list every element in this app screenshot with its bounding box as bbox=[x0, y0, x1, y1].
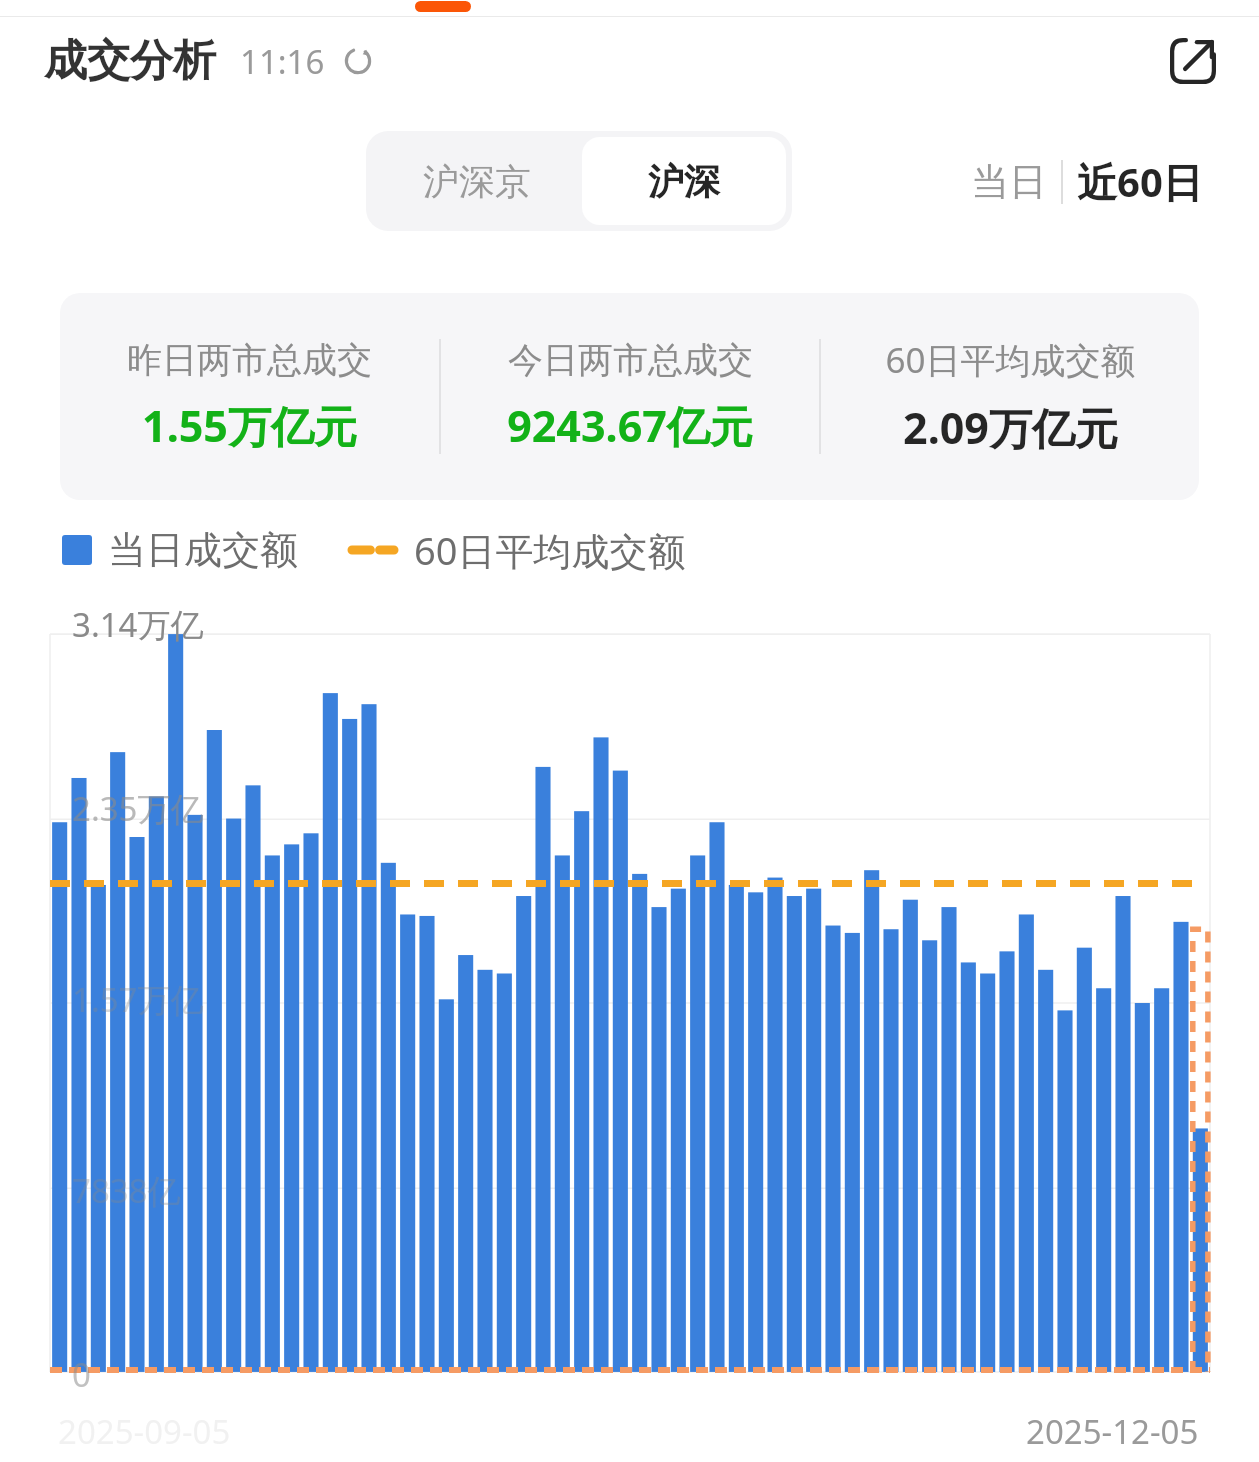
staticText: 2025-12-05 bbox=[1026, 1409, 1199, 1454]
staticText: 11:16 bbox=[240, 39, 325, 84]
staticText: 今日两市总成交 bbox=[508, 338, 753, 382]
staticText: 60日平均成交额 bbox=[414, 524, 686, 576]
staticText: 1.55万亿元 bbox=[142, 396, 357, 455]
staticText: 2.09万亿元 bbox=[903, 398, 1118, 457]
staticText: 成交分析 bbox=[44, 34, 216, 88]
staticText: 2.35万亿 bbox=[72, 786, 204, 831]
staticText: 当日 bbox=[971, 158, 1047, 206]
staticText: 3.14万亿 bbox=[72, 602, 204, 647]
staticText: 9243.67亿元 bbox=[507, 396, 753, 455]
staticText: 近60日 bbox=[1077, 154, 1203, 209]
button[interactable]: 沪深 bbox=[582, 137, 786, 225]
staticText: 2025-09-05 bbox=[58, 1409, 231, 1454]
button[interactable]: 昨日两市总成交 bbox=[60, 338, 439, 455]
button[interactable]: 沪深京 bbox=[372, 137, 582, 225]
staticText: 沪深 bbox=[648, 159, 720, 204]
staticText: 0 bbox=[72, 1352, 91, 1397]
staticText: 7838亿 bbox=[72, 1168, 181, 1213]
button[interactable]: 60日平均成交额 bbox=[821, 336, 1199, 457]
button[interactable]: 当日 bbox=[957, 146, 1061, 218]
staticText: 当日成交额 bbox=[108, 526, 298, 574]
staticText: 1.57万亿 bbox=[72, 977, 204, 1022]
button[interactable]: Open in new window bbox=[1161, 29, 1225, 93]
button[interactable]: Refresh bbox=[337, 40, 379, 82]
button[interactable]: 近60日 bbox=[1063, 142, 1217, 221]
button[interactable]: 今日两市总成交 bbox=[441, 338, 819, 455]
staticText: 沪深京 bbox=[423, 159, 531, 204]
staticText: 昨日两市总成交 bbox=[127, 338, 372, 382]
staticText: 60日平均成交额 bbox=[885, 336, 1136, 384]
